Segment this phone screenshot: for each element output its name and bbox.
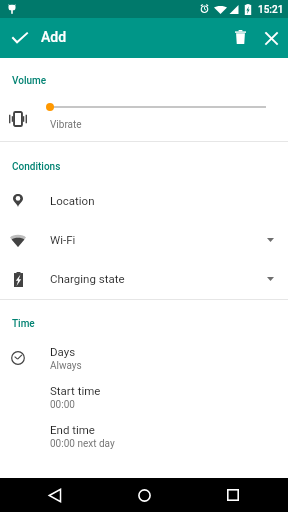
staticText: 00:00 (50, 399, 75, 411)
button[interactable]: Location (0, 185, 288, 224)
button[interactable]: Back (38, 478, 72, 512)
staticText: Location (50, 194, 95, 207)
staticText: Always (50, 360, 82, 372)
button[interactable]: Done (0, 18, 40, 58)
staticText: End time (50, 423, 95, 436)
button[interactable]: Home (127, 478, 161, 512)
staticText: Vibrate (50, 119, 82, 131)
staticText: Start time (50, 384, 101, 397)
button[interactable]: Wi-Fi (0, 224, 288, 263)
staticText: Time (12, 318, 35, 330)
staticText: Charging state (50, 272, 125, 285)
button[interactable]: Close (252, 19, 288, 57)
staticText: 15:21 (258, 4, 284, 16)
staticText: Conditions (12, 161, 61, 173)
button[interactable]: Charging state (0, 263, 288, 302)
button[interactable]: Recents (216, 478, 250, 512)
staticText: Wi-Fi (50, 233, 76, 246)
staticText: Volume (12, 75, 47, 87)
button[interactable]: Days (0, 344, 288, 383)
staticText: Add (41, 29, 67, 45)
button[interactable]: Delete (221, 18, 259, 56)
staticText: 00:00 next day (50, 438, 115, 450)
button[interactable]: Vibrate (0, 94, 288, 141)
staticText: Days (50, 345, 76, 358)
button[interactable]: End time (0, 422, 288, 461)
button[interactable]: Start time (0, 383, 288, 422)
